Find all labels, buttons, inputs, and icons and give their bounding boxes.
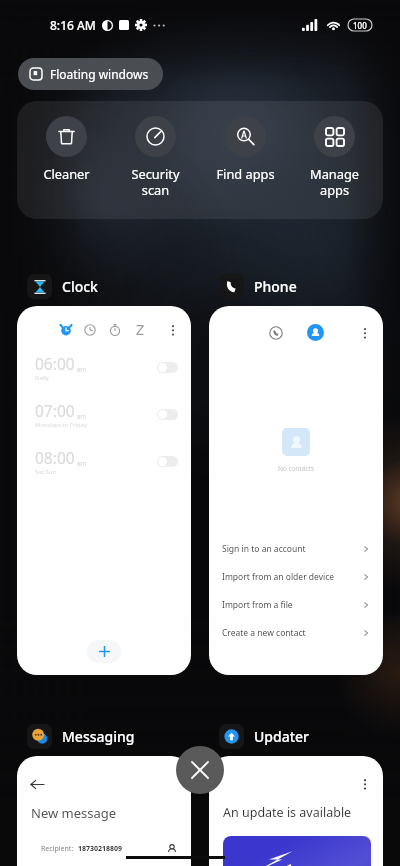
button[interactable]: Messaging xyxy=(27,724,135,749)
button[interactable]: Sign in to an account xyxy=(209,535,383,563)
staticText: An update is available xyxy=(223,804,352,821)
staticText: Import from an older device xyxy=(222,571,335,583)
staticText: Manage apps xyxy=(310,165,359,198)
staticText: Import from a file xyxy=(222,599,293,611)
button[interactable]: New message xyxy=(17,756,191,866)
staticText: Create a new contact xyxy=(222,627,306,639)
button[interactable]: Find apps xyxy=(204,116,286,182)
staticText: Messaging xyxy=(62,727,135,746)
staticText: Recipient: xyxy=(41,844,74,854)
staticText: New message xyxy=(31,804,117,822)
staticText: 8:16 AM xyxy=(50,17,96,33)
button[interactable]: Updater xyxy=(219,724,310,749)
button[interactable]: Toggle alarm xyxy=(157,362,178,373)
staticText: 100 xyxy=(353,20,367,31)
staticText: 08:00 xyxy=(35,447,75,468)
staticText: Floating windows xyxy=(50,66,149,82)
button[interactable]: Import from a file xyxy=(209,591,383,619)
button[interactable]: Cleaner xyxy=(25,116,107,182)
staticText: Sat Sun xyxy=(35,468,57,476)
staticText: Find apps xyxy=(216,165,275,182)
staticText: Sign in to an account xyxy=(222,543,306,555)
staticText: am xyxy=(75,365,87,374)
button[interactable]: Manage apps xyxy=(293,116,375,198)
staticText: Updater xyxy=(254,727,310,746)
staticText: Phone xyxy=(254,277,297,296)
button[interactable]: Security scan xyxy=(114,116,196,198)
button[interactable]: No contacts xyxy=(209,306,383,675)
staticText: 18730218809 xyxy=(78,844,123,854)
button[interactable]: Add alarm xyxy=(87,640,121,663)
staticText: am xyxy=(75,459,87,468)
staticText: No contacts xyxy=(278,464,315,473)
staticText: Security scan xyxy=(131,165,180,198)
button[interactable]: An update is available xyxy=(209,756,383,866)
button[interactable]: Phone xyxy=(219,274,297,299)
staticText: Cleaner xyxy=(43,165,90,182)
staticText: am xyxy=(75,412,87,421)
button[interactable]: Floating windows xyxy=(18,58,163,90)
button[interactable]: Toggle alarm xyxy=(157,409,178,420)
button[interactable]: Toggle alarm xyxy=(157,456,178,467)
button[interactable]: Import from an older device xyxy=(209,563,383,591)
button[interactable]: Clock xyxy=(27,274,98,299)
button[interactable]: 06:00 xyxy=(17,306,191,675)
button[interactable]: Create a new contact xyxy=(209,619,383,647)
staticText: Clock xyxy=(62,277,98,296)
staticText: Daily xyxy=(35,374,49,382)
staticText: Mondays to Friday xyxy=(35,421,87,429)
staticText: 06:00 xyxy=(35,353,75,374)
staticText: 07:00 xyxy=(35,400,75,421)
button[interactable]: Close all xyxy=(176,746,224,794)
